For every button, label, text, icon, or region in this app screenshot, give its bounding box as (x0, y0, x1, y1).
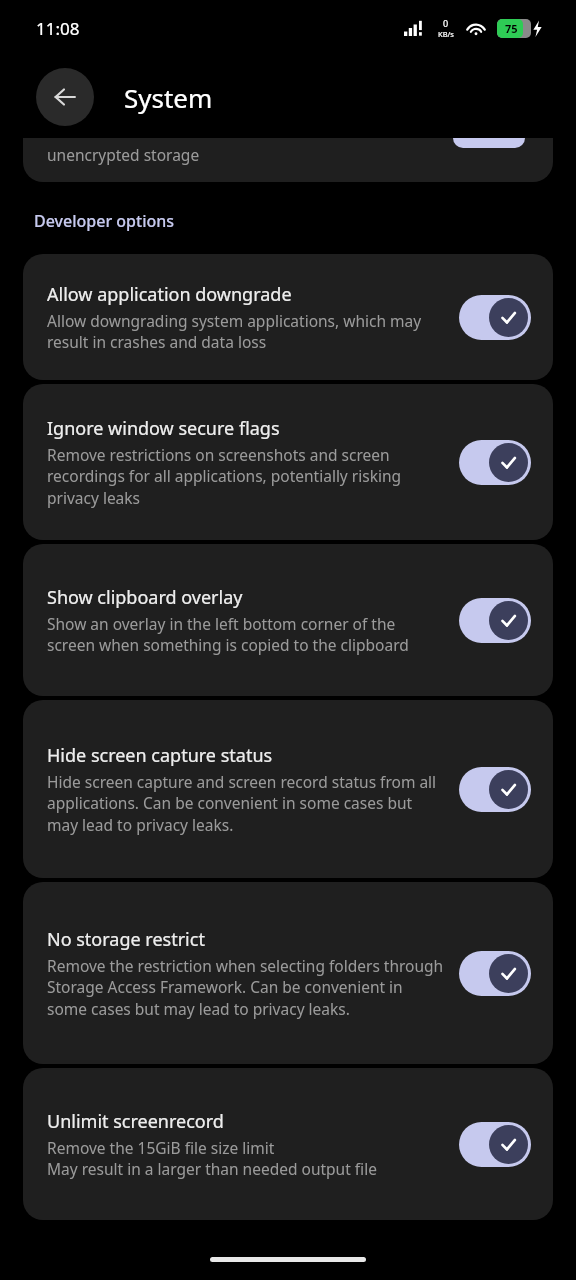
button[interactable]: Back (36, 68, 94, 126)
button[interactable]: Toggle on (459, 1122, 531, 1167)
staticText: KB/s (438, 29, 454, 39)
button[interactable]: Toggle on (459, 951, 531, 996)
staticText: Remove the restriction when selecting fo… (47, 955, 445, 1020)
staticText: Remove restrictions on screenshots and s… (47, 444, 445, 509)
button[interactable]: Ignore window secure flags (23, 384, 553, 540)
staticText: Developer options (34, 210, 175, 232)
button[interactable]: Toggle on (459, 598, 531, 643)
staticText: 0 (443, 17, 449, 29)
staticText: 11:08 (36, 17, 80, 40)
staticText: System (124, 80, 213, 115)
staticText: Allow downgrading system applications, w… (47, 310, 445, 353)
staticText: Remove the 15GiB file size limit May res… (47, 1137, 377, 1180)
staticText: Show clipboard overlay (47, 585, 243, 610)
button[interactable]: Toggle on (459, 440, 531, 485)
staticText: Hide screen capture and screen record st… (47, 771, 445, 836)
staticText: Ignore window secure flags (47, 416, 280, 441)
staticText: Hide screen capture status (47, 743, 273, 768)
staticText: Unlimit screenrecord (47, 1109, 224, 1134)
button[interactable]: Allow application downgrade (23, 254, 553, 380)
button[interactable]: Show clipboard overlay (23, 544, 553, 696)
button[interactable]: Hide screen capture status (23, 700, 553, 878)
button[interactable]: unencrypted storage (23, 138, 553, 182)
staticText: 75 (505, 21, 518, 36)
staticText: No storage restrict (47, 927, 205, 952)
button[interactable]: Toggle on (459, 295, 531, 340)
button[interactable]: Toggle on (459, 767, 531, 812)
staticText: Show an overlay in the left bottom corne… (47, 613, 445, 656)
button[interactable]: Unlimit screenrecord (23, 1068, 553, 1220)
button[interactable]: No storage restrict (23, 882, 553, 1064)
staticText: Allow application downgrade (47, 282, 292, 307)
staticText: unencrypted storage (47, 144, 200, 165)
